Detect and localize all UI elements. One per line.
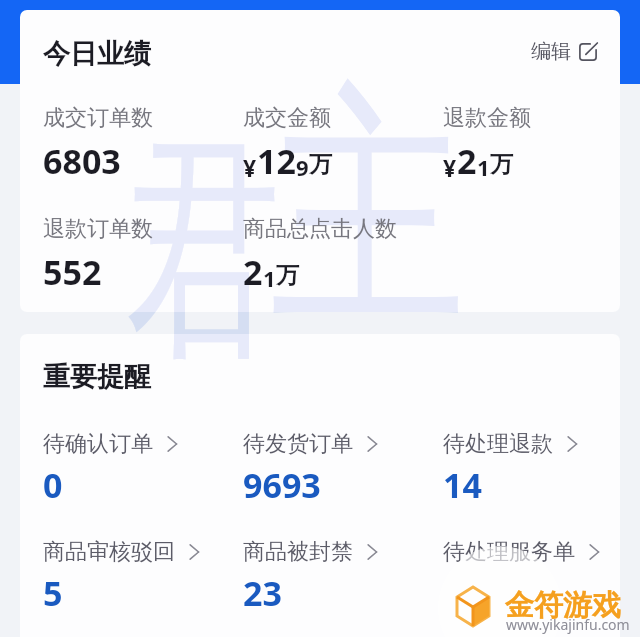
- staticText: 9: [296, 152, 309, 182]
- staticText: 万: [309, 150, 332, 179]
- staticText: www.yikajinfu.com: [506, 615, 630, 634]
- staticText: 12: [257, 138, 296, 184]
- staticText: 待处理服务单: [443, 538, 575, 566]
- button[interactable]: 编辑: [531, 39, 597, 64]
- staticText: 23: [243, 570, 282, 616]
- staticText: 今日业绩: [43, 37, 151, 71]
- staticText: ¥: [243, 152, 257, 183]
- staticText: 金符游戏: [505, 587, 621, 624]
- staticText: 9693: [243, 462, 321, 508]
- staticText: 5: [43, 570, 63, 616]
- staticText: 成交订单数: [43, 104, 153, 132]
- staticText: 待处理退款: [443, 430, 553, 458]
- staticText: 1: [477, 152, 490, 182]
- other: Edit: [579, 43, 597, 61]
- staticText: 主: [270, 50, 466, 375]
- button[interactable]: 待处理退款: [443, 430, 620, 508]
- staticText: 商品被封禁: [243, 538, 353, 566]
- button[interactable]: 商品审核驳回: [43, 538, 239, 616]
- staticText: 1: [263, 263, 276, 293]
- staticText: 万: [276, 261, 299, 290]
- staticText: 退款金额: [443, 104, 531, 132]
- staticText: 编辑: [531, 39, 571, 64]
- staticText: 待发货订单: [243, 430, 353, 458]
- button[interactable]: 待处理服务单: [443, 538, 620, 570]
- staticText: 退款订单数: [43, 215, 153, 243]
- button[interactable]: 待发货订单: [243, 430, 439, 508]
- staticText: 商品审核驳回: [43, 538, 175, 566]
- staticText: 6803: [43, 138, 121, 184]
- staticText: 待确认订单: [43, 430, 153, 458]
- button[interactable]: 待确认订单: [43, 430, 239, 508]
- staticText: 君: [126, 334, 281, 397]
- staticText: 552: [43, 249, 102, 295]
- staticText: 万: [490, 150, 513, 179]
- staticText: 君: [126, 103, 281, 312]
- staticText: 0: [43, 462, 63, 508]
- staticText: 商品总点击人数: [243, 215, 397, 243]
- staticText: 14: [443, 462, 482, 508]
- staticText: ¥: [443, 152, 457, 183]
- staticText: 2: [457, 138, 477, 184]
- staticText: 重要提醒: [43, 360, 151, 394]
- staticText: 成交金额: [243, 104, 331, 132]
- staticText: 君: [126, 103, 281, 402]
- staticText: 主: [270, 50, 466, 312]
- button[interactable]: 商品被封禁: [243, 538, 439, 616]
- staticText: 2: [243, 249, 263, 295]
